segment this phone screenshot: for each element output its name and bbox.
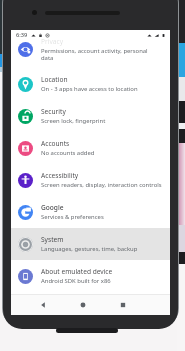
staticText: Permissions, account activity, personal … — [41, 47, 148, 62]
staticText: Security — [41, 107, 66, 116]
staticText: Google — [41, 203, 64, 212]
button[interactable]: Accessibility — [11, 164, 170, 196]
button[interactable]: Home — [76, 298, 90, 312]
button[interactable]: About emulated device — [11, 260, 170, 292]
staticText: Screen readers, display, interaction con… — [41, 181, 162, 189]
button[interactable]: Accounts — [11, 132, 170, 164]
staticText: Location — [41, 75, 68, 84]
button[interactable]: Privacy — [11, 30, 170, 68]
staticText: System — [41, 235, 64, 244]
staticText: Accessibility — [41, 171, 79, 180]
button[interactable]: Google — [11, 196, 170, 228]
staticText: Accounts — [41, 139, 70, 148]
button[interactable]: Back — [36, 298, 50, 312]
staticText: 6:39 — [16, 31, 28, 39]
staticText: About emulated device — [41, 267, 113, 276]
staticText: Services & preferences — [41, 213, 104, 221]
staticText: Android SDK built for x86 — [41, 277, 111, 285]
staticText: On - 3 apps have access to location — [41, 85, 138, 93]
staticText: Screen lock, fingerprint — [41, 117, 106, 125]
staticText: No accounts added — [41, 149, 95, 157]
button[interactable]: Location — [11, 68, 170, 100]
staticText: Privacy — [41, 37, 63, 46]
button[interactable]: Security — [11, 100, 170, 132]
staticText: Languages, gestures, time, backup — [41, 245, 138, 253]
button[interactable]: Recents — [116, 298, 130, 312]
button[interactable]: System — [11, 228, 170, 260]
